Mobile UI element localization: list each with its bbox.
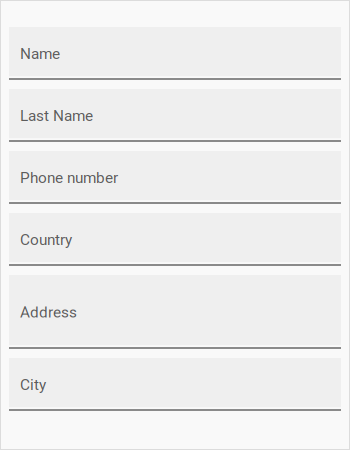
- button[interactable]: Country: [9, 213, 341, 266]
- button[interactable]: Last Name: [9, 89, 341, 142]
- button[interactable]: City: [9, 358, 341, 411]
- staticText: Phone number: [20, 169, 118, 187]
- staticText: Country: [20, 231, 72, 249]
- button[interactable]: Phone number: [9, 151, 341, 204]
- button[interactable]: Address: [9, 275, 341, 349]
- staticText: City: [20, 376, 46, 394]
- staticText: Last Name: [20, 107, 93, 125]
- staticText: Name: [20, 45, 60, 63]
- button[interactable]: Name: [9, 27, 341, 80]
- staticText: Address: [20, 303, 77, 321]
